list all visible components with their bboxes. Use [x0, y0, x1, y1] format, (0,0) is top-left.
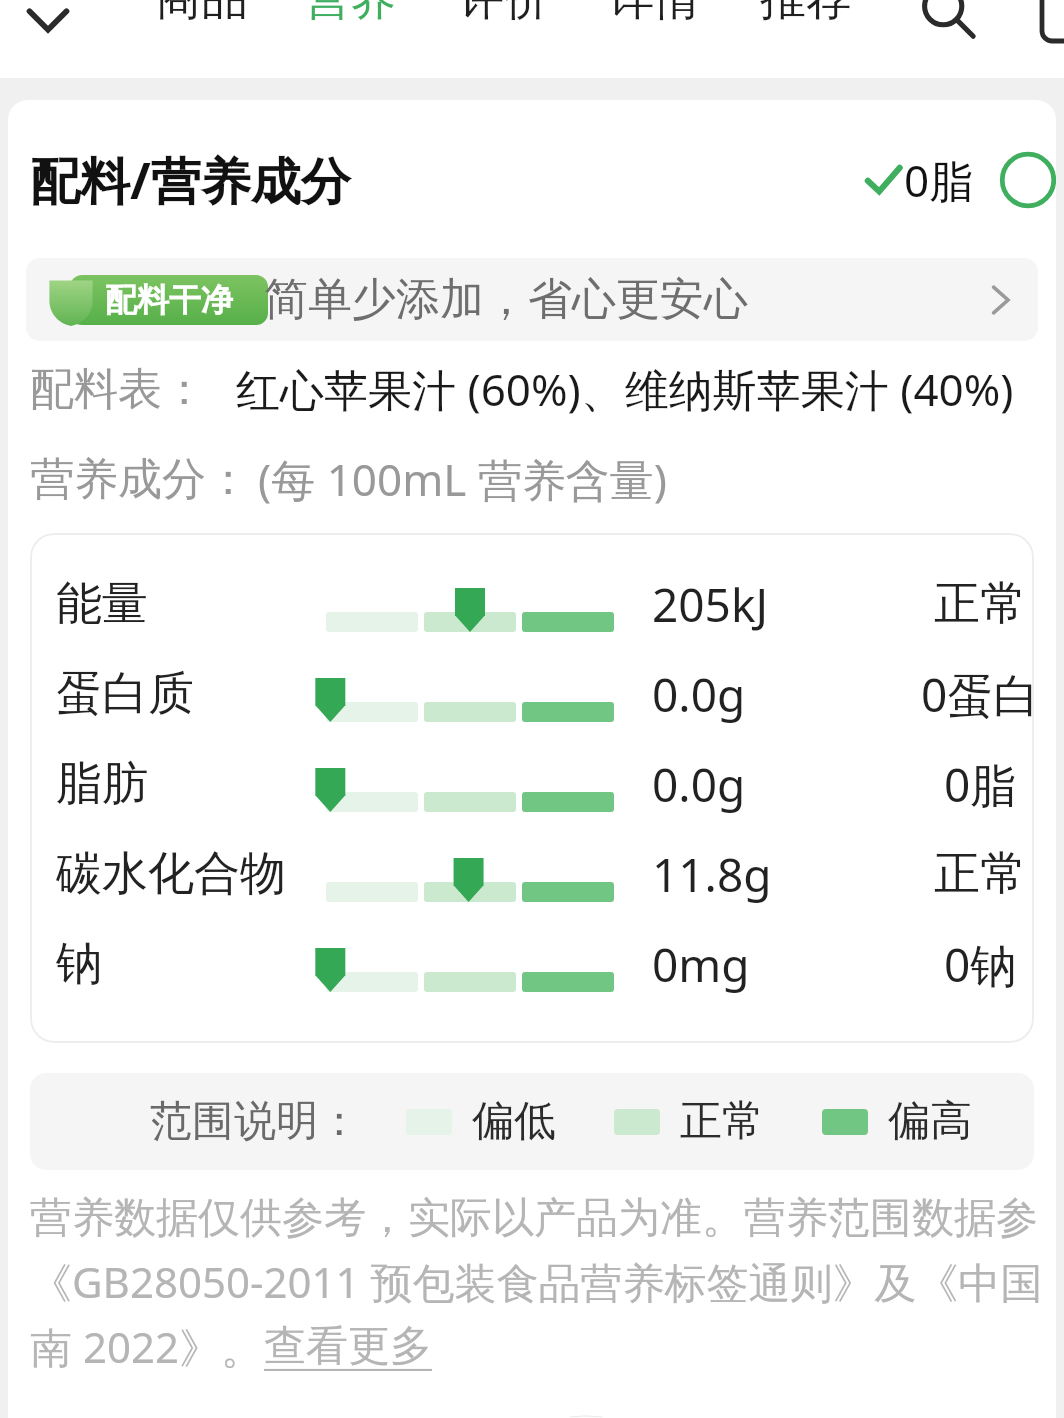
staticText: 营养数据仅供参考，实际以产品为准。营养范围数据参考 [30, 1192, 1046, 1245]
staticText: (每 100mL 营养含量) [258, 449, 667, 509]
staticText: 红心苹果汁 (60%)、维纳斯苹果汁 (40%) [236, 359, 1014, 419]
staticText: 碳水化合物 [56, 845, 286, 903]
staticText: 评价 [458, 0, 550, 28]
button[interactable]: 0脂 [864, 150, 1056, 210]
staticText: 0.0g [652, 753, 746, 816]
staticText: 钠 [56, 935, 102, 993]
staticText: 商品 [156, 0, 248, 28]
staticText: 推荐 [760, 0, 852, 28]
button[interactable]: Collapse [14, 0, 82, 54]
staticText: 配料/营养成分 [30, 146, 351, 214]
staticText: 0蛋白 [921, 663, 1034, 726]
staticText: 正常 [680, 1095, 764, 1148]
button[interactable]: 商品 [148, 0, 256, 32]
staticText: 205kJ [652, 573, 769, 636]
staticText: 0脂 [944, 753, 1017, 816]
staticText: 简单少添加，省心更安心 [264, 272, 748, 327]
button[interactable]: 配料干净 [26, 258, 1038, 341]
staticText: 0脂 [904, 150, 974, 210]
button[interactable]: 营养 [296, 0, 404, 32]
staticText: 0钠 [944, 933, 1017, 996]
staticText: 《GB28050-2011 预包装食品营养标签通则》及《中国居民膳食指 [30, 1253, 1046, 1310]
button[interactable]: 蛋白质 [30, 649, 1034, 739]
staticText: 偏低 [472, 1095, 556, 1148]
staticText: 范围说明： [150, 1095, 360, 1148]
button[interactable]: 钠 [30, 919, 1034, 1009]
staticText: 0mg [652, 933, 750, 996]
staticText: 详情 [608, 0, 700, 28]
staticText: 南 2022》。 [30, 1318, 264, 1375]
button[interactable]: 能量 [30, 559, 1034, 649]
staticText: 查看更多 [264, 1320, 432, 1373]
staticText: 11.8g [652, 843, 772, 906]
button[interactable]: 详情 [600, 0, 708, 32]
button[interactable]: More [1026, 0, 1064, 52]
staticText: 营养 [304, 0, 396, 28]
staticText: 脂肪 [56, 755, 148, 813]
staticText: 正常 [934, 845, 1026, 903]
staticText: 营养成分： [30, 452, 250, 507]
staticText: 蛋白质 [56, 665, 194, 723]
button[interactable]: 推荐 [752, 0, 860, 32]
staticText: 配料表： [30, 362, 206, 417]
button[interactable]: 评价 [450, 0, 558, 32]
staticText: 偏高 [888, 1095, 972, 1148]
button[interactable]: 脂肪 [30, 739, 1034, 829]
button[interactable]: Search [900, 0, 996, 50]
staticText: 能量 [56, 575, 148, 633]
button[interactable]: 碳水化合物 [30, 829, 1034, 919]
button[interactable]: 查看更多 [264, 1320, 432, 1373]
staticText: 正常 [934, 575, 1026, 633]
staticText: 配料干净 [105, 280, 233, 320]
staticText: 0.0g [652, 663, 746, 726]
